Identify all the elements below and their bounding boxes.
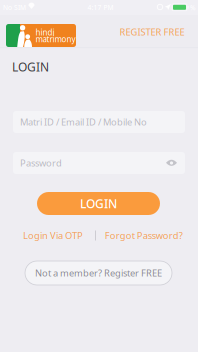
button[interactable]: Login Via OTP [23, 229, 83, 242]
staticText: Matri ID / Email ID / Mobile No [20, 116, 147, 128]
staticText: No SIM [3, 3, 26, 12]
staticText: REGISTER FREE [119, 26, 184, 38]
staticText: Password [20, 157, 62, 169]
button[interactable]: Not a member? Register FREE [25, 261, 172, 285]
staticText: Forgot Password? [105, 229, 183, 242]
staticText: 4:17 PM [87, 3, 113, 12]
button[interactable]: Forgot Password? [105, 229, 183, 242]
button[interactable]: REGISTER FREE [112, 22, 192, 42]
staticText: matrimony [35, 34, 75, 44]
staticText: Not a member? Register FREE [35, 267, 162, 279]
staticText: LOGIN [12, 59, 49, 75]
button[interactable]: LOGIN [37, 192, 160, 215]
staticText: LOGIN [80, 195, 117, 211]
staticText: hindi [35, 27, 54, 38]
staticText: Login Via OTP [23, 229, 83, 242]
